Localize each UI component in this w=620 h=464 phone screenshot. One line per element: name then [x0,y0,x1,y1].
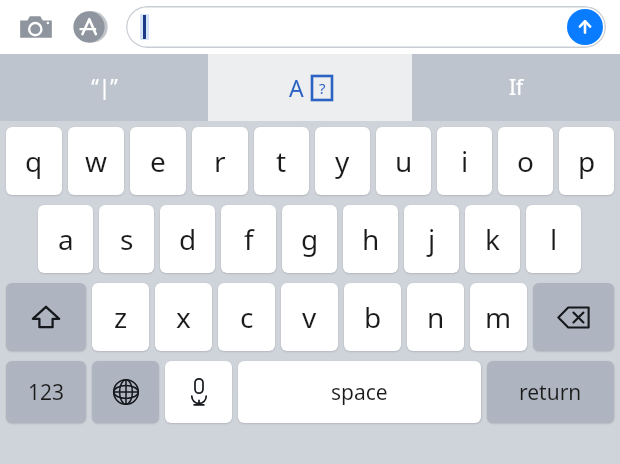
button[interactable]: t [254,127,309,195]
staticText: k [485,220,500,258]
button[interactable]: space [238,361,481,423]
button[interactable]: d [160,205,215,273]
button[interactable]: u [376,127,431,195]
button[interactable]: Backspace [533,283,614,351]
button[interactable]: o [498,127,553,195]
button[interactable]: g [282,205,337,273]
staticText: d [179,220,197,258]
staticText: w [85,142,108,180]
staticText: space [331,378,388,407]
button[interactable]: m [470,283,527,351]
staticText: h [362,220,380,258]
staticText: y [335,142,350,180]
button[interactable]: Dictate [165,361,232,423]
button[interactable]: j [404,205,459,273]
button[interactable]: n [407,283,464,351]
button[interactable]: q [6,127,62,195]
button[interactable]: c [218,283,275,351]
button[interactable]: App Store [68,5,112,49]
staticText: ? [319,78,326,98]
button[interactable]: w [68,127,124,195]
button[interactable]: i [437,127,492,195]
button[interactable]: Shift [6,283,86,351]
staticText: j [428,220,436,258]
button[interactable]: A [208,54,412,121]
button[interactable]: y [315,127,370,195]
button[interactable]: k [465,205,520,273]
staticText: s [120,220,134,258]
staticText: r [214,142,226,180]
staticText: g [301,220,319,258]
staticText: f [244,220,254,258]
button[interactable]: Change keyboard language [92,361,159,423]
button[interactable]: Send [126,6,606,48]
staticText: l [550,220,558,258]
button[interactable]: 123 [6,361,86,423]
button[interactable]: v [281,283,338,351]
button[interactable]: h [343,205,398,273]
button[interactable]: r [192,127,248,195]
staticText: z [114,298,128,336]
staticText: b [364,298,382,336]
staticText: “|” [91,73,118,102]
button[interactable]: e [130,127,186,195]
button[interactable]: Camera [14,5,58,49]
button[interactable]: a [38,205,93,273]
staticText: c [240,298,254,336]
staticText: m [485,298,512,336]
button[interactable]: f [221,205,276,273]
button[interactable]: “|” [0,54,208,121]
staticText: A [289,72,304,103]
button[interactable]: If [412,54,620,121]
staticText: t [276,142,287,180]
button[interactable]: b [344,283,401,351]
button[interactable]: return [487,361,614,423]
staticText: return [519,378,582,407]
button[interactable]: Send [567,9,603,45]
staticText: 123 [28,378,65,407]
staticText: x [176,298,191,336]
staticText: i [461,142,469,180]
button[interactable]: s [99,205,154,273]
staticText: If [509,73,524,102]
button[interactable]: x [155,283,212,351]
staticText: q [25,142,43,180]
staticText: u [395,142,413,180]
button[interactable]: z [92,283,149,351]
staticText: e [150,142,166,180]
staticText: o [517,142,534,180]
button[interactable]: p [559,127,614,195]
staticText: v [302,298,317,336]
button[interactable]: l [526,205,581,273]
staticText: a [58,220,74,258]
staticText: n [427,298,445,336]
staticText: p [578,142,596,180]
